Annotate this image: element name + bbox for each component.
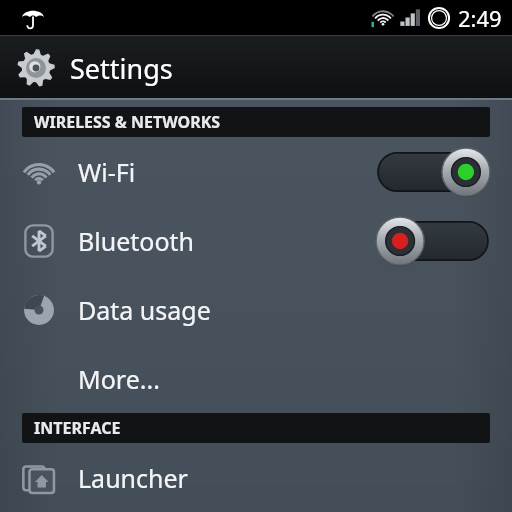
staticText: Wi-Fi (78, 155, 136, 189)
button[interactable]: Settings (0, 36, 512, 100)
staticText: Bluetooth (78, 224, 195, 258)
staticText: WIRELESS & NETWORKS (34, 111, 221, 133)
staticText: 2:49 (458, 3, 502, 33)
button[interactable]: Wi-Fi (0, 137, 512, 206)
staticText: Data usage (78, 293, 211, 327)
staticText: Settings (70, 50, 173, 87)
staticText: More... (78, 362, 160, 396)
button[interactable]: Data usage (0, 275, 512, 344)
button[interactable]: More... (0, 344, 512, 413)
staticText: INTERFACE (34, 417, 121, 439)
staticText: Launcher (78, 461, 188, 495)
button[interactable]: Bluetooth (0, 206, 512, 275)
button[interactable]: Launcher (0, 443, 512, 512)
button[interactable]: Off (378, 217, 488, 265)
button[interactable]: On (378, 148, 488, 196)
